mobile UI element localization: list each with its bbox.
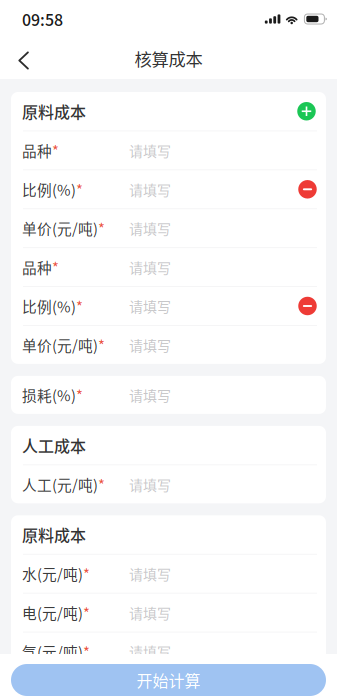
staticText: *	[52, 256, 59, 278]
staticText: 损耗(%)	[22, 384, 76, 405]
staticText: 电(元/吨)	[22, 602, 83, 623]
staticText: 请填写	[129, 140, 171, 161]
button[interactable]: Remove row	[293, 291, 321, 321]
staticText: 单价(元/吨)	[22, 334, 98, 355]
button[interactable]: 损耗(%)	[11, 376, 326, 414]
staticText: *	[83, 641, 90, 662]
staticText: 开始计算	[136, 668, 200, 692]
staticText: 请填写	[129, 641, 171, 662]
staticText: 水(元/吨)	[22, 563, 83, 584]
button[interactable]: Back	[0, 38, 41, 79]
staticText: 比例(%)	[22, 295, 76, 317]
staticText: 单价(元/吨)	[22, 218, 98, 239]
staticText: 请填写	[129, 602, 171, 623]
staticText: 原料成本	[22, 100, 86, 123]
staticText: 请填写	[129, 218, 171, 238]
button[interactable]: 水(元/吨)	[11, 555, 326, 593]
staticText: 品种	[22, 140, 52, 161]
button[interactable]: Add row	[291, 96, 321, 126]
button[interactable]: 人工(元/吨)	[11, 465, 326, 503]
button[interactable]: 开始计算	[0, 654, 337, 700]
staticText: *	[98, 334, 105, 355]
staticText: 品种	[22, 256, 52, 278]
staticText: 原料成本	[22, 523, 86, 546]
staticText: *	[83, 602, 90, 623]
staticText: *	[98, 218, 105, 239]
button[interactable]: 品种	[11, 248, 326, 286]
staticText: 人工(元/吨)	[22, 474, 98, 495]
button[interactable]: 单价(元/吨)	[11, 209, 326, 247]
button[interactable]: 气(元/吨)	[11, 632, 326, 670]
staticText: *	[98, 474, 105, 495]
staticText: 请填写	[129, 385, 171, 405]
staticText: 气(元/吨)	[22, 641, 83, 662]
button[interactable]: 品种	[11, 131, 326, 169]
staticText: *	[76, 179, 83, 200]
button[interactable]: 单价(元/吨)	[11, 326, 326, 364]
staticText: 请填写	[129, 474, 171, 494]
staticText: 比例(%)	[22, 179, 76, 200]
staticText: *	[76, 384, 83, 405]
staticText: 请填写	[129, 179, 171, 199]
staticText: 请填写	[129, 335, 171, 355]
button[interactable]: 比例(%)	[11, 170, 326, 208]
staticText: 09:58	[22, 7, 63, 31]
button[interactable]: 比例(%)	[11, 287, 326, 325]
staticText: 请填写	[129, 296, 171, 316]
button[interactable]: 电(元/吨)	[11, 594, 326, 632]
staticText: 核算成本	[134, 46, 202, 71]
staticText: 请填写	[129, 257, 171, 277]
staticText: *	[76, 295, 83, 317]
staticText: *	[83, 563, 90, 584]
staticText: 人工成本	[22, 434, 86, 457]
staticText: 请填写	[129, 564, 171, 584]
staticText: *	[52, 140, 59, 161]
button[interactable]: Remove row	[293, 174, 321, 204]
